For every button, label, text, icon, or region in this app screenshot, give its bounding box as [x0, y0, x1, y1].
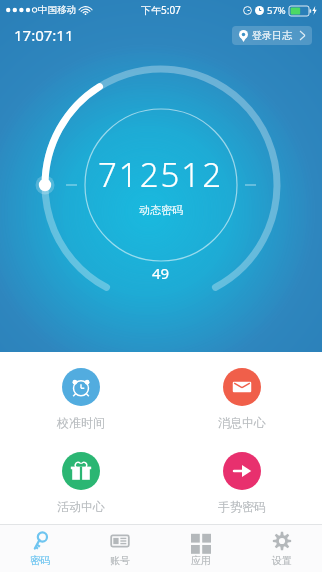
staticText: 校准时间: [57, 415, 105, 430]
staticText: 下午5:07: [141, 3, 181, 17]
button[interactable]: 账号: [80, 525, 160, 572]
button[interactable]: 应用: [160, 525, 241, 572]
staticText: 设置: [272, 554, 292, 567]
staticText: 712512: [98, 152, 224, 197]
staticText: 中国移动: [38, 4, 76, 16]
button[interactable]: 登录日志: [232, 26, 312, 45]
staticText: 手势密码: [218, 499, 266, 514]
staticText: 17:07:11: [14, 25, 74, 45]
staticText: 活动中心: [57, 499, 105, 514]
button[interactable]: 消息中心: [161, 368, 322, 430]
button[interactable]: 手势密码: [161, 452, 322, 514]
staticText: 49: [152, 263, 170, 283]
button[interactable]: 设置: [241, 525, 322, 572]
button[interactable]: 活动中心: [0, 452, 161, 514]
staticText: 动态密码: [139, 203, 183, 217]
staticText: 登录日志: [252, 29, 292, 42]
staticText: 消息中心: [218, 415, 266, 430]
button[interactable]: 密码: [0, 525, 80, 572]
staticText: 密码: [30, 554, 50, 567]
button[interactable]: 校准时间: [0, 368, 161, 430]
staticText: 账号: [110, 554, 130, 567]
staticText: 应用: [191, 554, 211, 567]
staticText: 57%: [267, 4, 286, 17]
